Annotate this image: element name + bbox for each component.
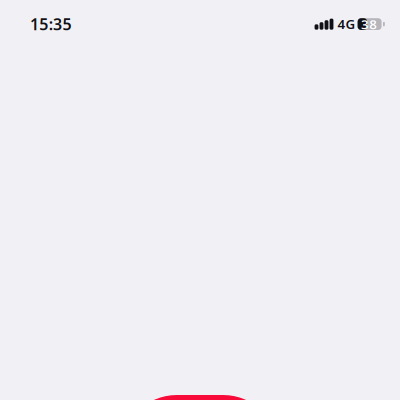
staticText: 4G (337, 15, 355, 33)
button[interactable]: Continue (121, 395, 279, 400)
staticText: 38 (361, 15, 377, 33)
staticText: 15:35 (30, 13, 71, 35)
